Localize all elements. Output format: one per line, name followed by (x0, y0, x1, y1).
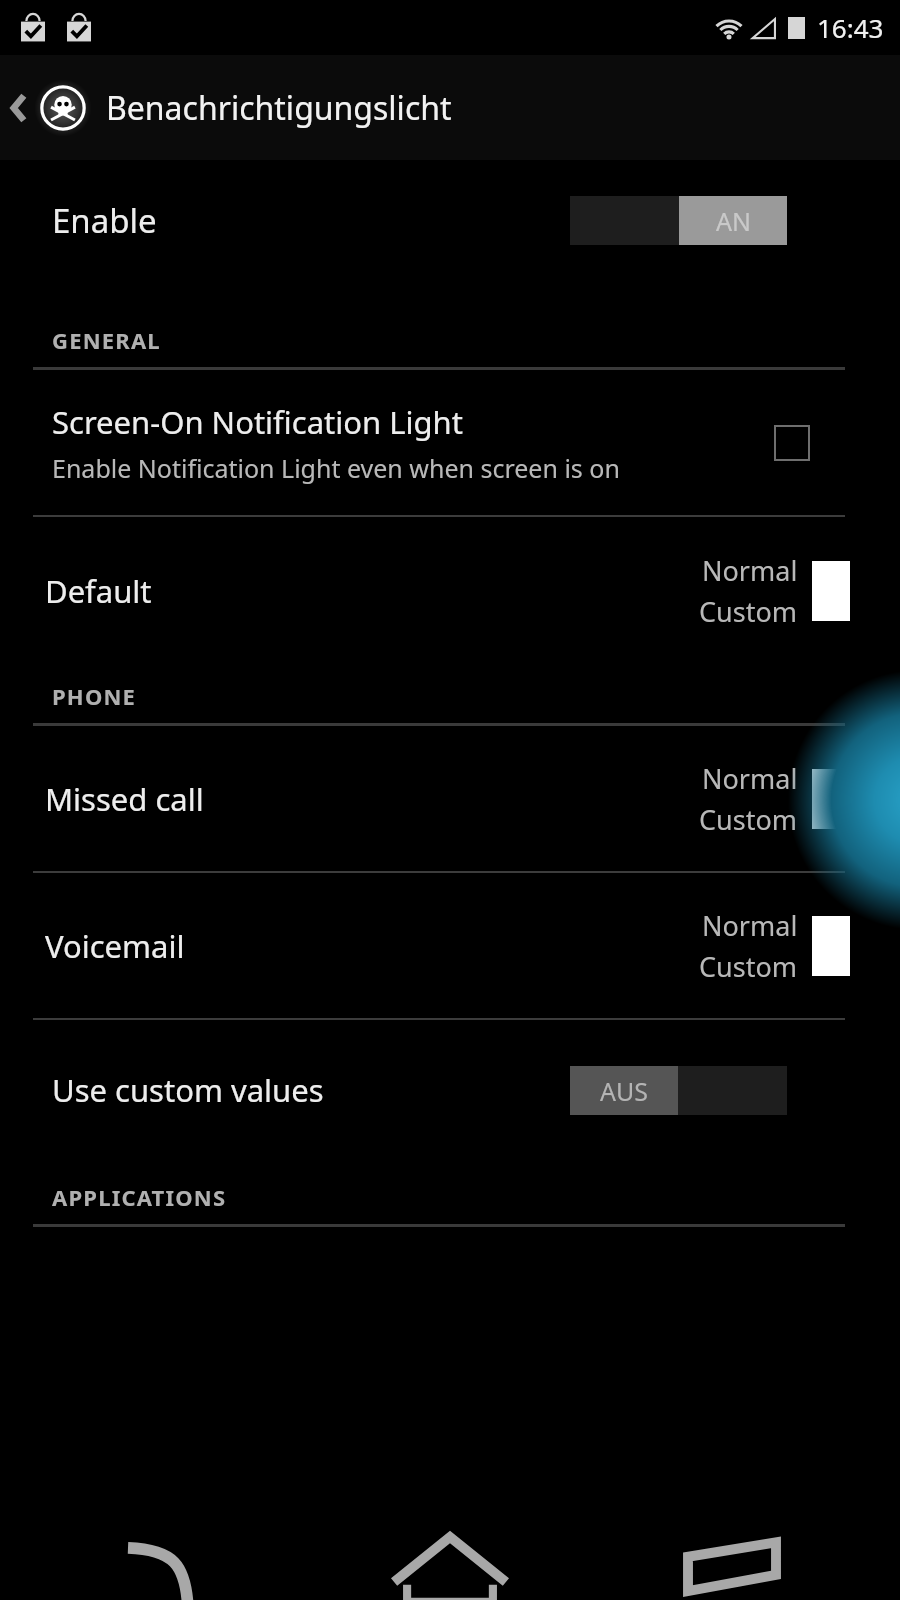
other: Screen-On Notification Light checkbox (774, 425, 810, 461)
button[interactable]: AN (570, 196, 787, 245)
staticText: Benachrichtigungslicht (106, 86, 452, 130)
staticText: Normal (702, 552, 798, 589)
staticText: AUS (600, 1074, 648, 1108)
staticText: GENERAL (52, 325, 161, 355)
button[interactable]: Back (0, 77, 96, 139)
staticText: 16:43 (817, 10, 884, 45)
staticText: APPLICATIONS (52, 1182, 227, 1212)
staticText: PHONE (52, 681, 137, 711)
staticText: Normal (702, 760, 798, 797)
button[interactable]: Screen-On Notification Light (0, 370, 900, 515)
staticText: Custom (699, 948, 798, 985)
button[interactable]: Voicemail (0, 873, 900, 1018)
staticText: Custom (699, 801, 798, 838)
button[interactable]: Missed call (0, 726, 900, 871)
button[interactable]: Recent apps (682, 1510, 782, 1600)
staticText: Voicemail (45, 925, 185, 967)
staticText: Enable (52, 198, 157, 243)
staticText: Enable Notification Light even when scre… (52, 451, 620, 485)
button[interactable]: Back (118, 1510, 218, 1600)
button[interactable]: Home (385, 1510, 515, 1600)
staticText: Normal (702, 907, 798, 944)
button[interactable]: Default (0, 517, 900, 665)
staticText: Missed call (45, 778, 204, 820)
staticText: AN (716, 204, 751, 238)
staticText: Default (45, 570, 152, 612)
staticText: Screen-On Notification Light (52, 401, 463, 443)
staticText: Use custom values (52, 1069, 324, 1111)
staticText: Custom (699, 593, 798, 630)
button[interactable]: AUS (570, 1066, 787, 1115)
